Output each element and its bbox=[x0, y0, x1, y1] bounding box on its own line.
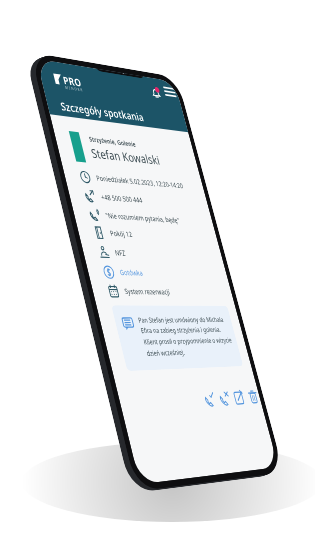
staticText: Poniedziałek 5.02.2023, 12:20-14:20 bbox=[95, 173, 184, 191]
button[interactable]: Pan Stefan jest umówiony do Michała Efir… bbox=[111, 305, 243, 371]
button[interactable]: +48 500 500 444 bbox=[83, 188, 138, 207]
button[interactable]: Poniedziałek 5.02.2023, 12:20-14:20 bbox=[78, 169, 180, 192]
staticText: "Nie rozumiem pytania, będę" bbox=[104, 210, 181, 225]
button[interactable]: Odrzuć połączenie bbox=[217, 391, 232, 407]
staticText: Szczegóły spotkania bbox=[59, 99, 145, 124]
button[interactable]: Usuń bbox=[246, 389, 260, 405]
staticText: System rezerwacji bbox=[123, 286, 171, 297]
staticText: Pan Stefan jest umówiony do Michała Efir… bbox=[137, 315, 239, 359]
button[interactable]: NFZ bbox=[97, 244, 121, 261]
button[interactable]: Powiadomienia bbox=[149, 85, 163, 100]
button[interactable]: Pokój 12 bbox=[92, 225, 129, 242]
button[interactable]: Edytuj bbox=[232, 390, 246, 406]
button[interactable]: Gotówka bbox=[102, 264, 139, 280]
staticText: Strzyżenie, Golenie bbox=[88, 134, 137, 148]
button[interactable]: Zadzwoń bbox=[203, 392, 217, 408]
staticText: Gotówka bbox=[119, 267, 144, 278]
staticText: +48 500 500 444 bbox=[100, 192, 143, 205]
button[interactable]: PRO bbox=[53, 73, 85, 97]
staticText: PRO bbox=[61, 73, 83, 90]
staticText: Stefan Kowalski bbox=[89, 144, 162, 168]
staticText: MINDER bbox=[64, 85, 84, 93]
button[interactable]: Menu bbox=[163, 86, 176, 98]
button[interactable]: "Nie rozumiem pytania, będę" bbox=[87, 207, 176, 227]
staticText: Pokój 12 bbox=[109, 228, 134, 239]
staticText: NFZ bbox=[114, 248, 127, 258]
button[interactable]: System rezerwacji bbox=[106, 283, 166, 299]
